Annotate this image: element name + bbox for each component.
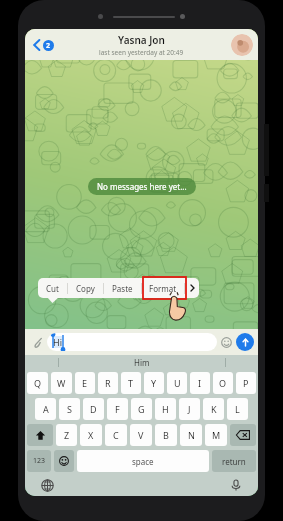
button[interactable]: Emoji keyboard: [54, 450, 74, 472]
staticText: I: [198, 377, 202, 389]
button[interactable]: D: [83, 398, 104, 420]
button[interactable]: R: [98, 372, 118, 394]
staticText: H: [162, 403, 169, 415]
staticText: T: [128, 377, 134, 389]
staticText: M: [212, 429, 221, 441]
staticText: Copy: [76, 283, 95, 294]
button[interactable]: Profile photo: [231, 34, 253, 56]
staticText: Format: [149, 283, 177, 294]
button[interactable]: Copy: [68, 278, 103, 298]
button[interactable]: 123: [27, 450, 51, 472]
staticText: E: [82, 377, 88, 389]
button[interactable]: Change keyboard: [39, 477, 55, 493]
staticText: Q: [34, 377, 42, 389]
button[interactable]: Emoji: [217, 333, 235, 351]
button[interactable]: Hi: [47, 333, 217, 351]
button[interactable]: Cut: [38, 278, 67, 298]
staticText: K: [211, 403, 217, 415]
staticText: B: [163, 429, 169, 441]
button[interactable]: F: [107, 398, 128, 420]
button[interactable]: Attach: [29, 333, 47, 351]
staticText: Paste: [112, 283, 133, 294]
button[interactable]: Send: [236, 333, 254, 351]
button[interactable]: Format: [142, 278, 184, 298]
staticText: L: [235, 403, 240, 415]
staticText: Yasna Jon: [118, 33, 165, 47]
button[interactable]: I: [190, 372, 210, 394]
button[interactable]: Dictate: [228, 477, 244, 493]
staticText: C: [113, 429, 119, 441]
staticText: return: [222, 456, 246, 467]
staticText: A: [43, 403, 49, 415]
button[interactable]: A: [35, 398, 56, 420]
staticText: space: [132, 456, 154, 467]
staticText: Z: [64, 429, 70, 441]
button[interactable]: Shift: [27, 424, 53, 446]
button[interactable]: N: [180, 424, 202, 446]
button[interactable]: X: [80, 424, 102, 446]
button[interactable]: T: [121, 372, 141, 394]
staticText: D: [90, 403, 97, 415]
button[interactable]: W: [51, 372, 72, 394]
button[interactable]: P: [236, 372, 256, 394]
staticText: X: [88, 429, 94, 441]
staticText: S: [67, 403, 72, 415]
button[interactable]: E: [75, 372, 95, 394]
button[interactable]: K: [203, 398, 224, 420]
staticText: W: [57, 377, 66, 389]
staticText: 123: [33, 456, 46, 466]
button[interactable]: More: [185, 278, 199, 298]
staticText: U: [174, 377, 181, 389]
button[interactable]: Paste: [104, 278, 141, 298]
button[interactable]: S: [59, 398, 80, 420]
staticText: G: [138, 403, 145, 415]
staticText: 2: [46, 41, 51, 51]
button[interactable]: O: [213, 372, 233, 394]
button[interactable]: space: [77, 450, 209, 472]
button[interactable]: H: [155, 398, 176, 420]
staticText: R: [105, 377, 111, 389]
staticText: N: [188, 429, 195, 441]
button[interactable]: J: [179, 398, 200, 420]
staticText: J: [188, 403, 191, 415]
button[interactable]: M: [205, 424, 227, 446]
staticText: V: [138, 429, 144, 441]
button[interactable]: Z: [56, 424, 77, 446]
button[interactable]: Back, 2 unread: [30, 36, 57, 54]
button[interactable]: B: [155, 424, 177, 446]
button[interactable]: Y: [144, 372, 164, 394]
staticText: Hi: [53, 336, 62, 348]
button[interactable]: Backspace: [230, 424, 256, 446]
staticText: No messages here yet...: [97, 181, 187, 192]
button[interactable]: V: [130, 424, 152, 446]
button[interactable]: C: [105, 424, 127, 446]
button[interactable]: return: [212, 450, 256, 472]
button[interactable]: Q: [27, 372, 48, 394]
staticText: P: [243, 377, 249, 389]
button[interactable]: G: [131, 398, 152, 420]
staticText: Cut: [46, 283, 59, 294]
staticText: last seen yesterday at 20:49: [99, 48, 184, 57]
button[interactable]: Him: [124, 357, 160, 368]
staticText: F: [115, 403, 120, 415]
button[interactable]: U: [167, 372, 187, 394]
staticText: O: [219, 377, 227, 389]
button[interactable]: L: [227, 398, 248, 420]
staticText: Him: [134, 357, 150, 368]
staticText: Y: [151, 377, 157, 389]
